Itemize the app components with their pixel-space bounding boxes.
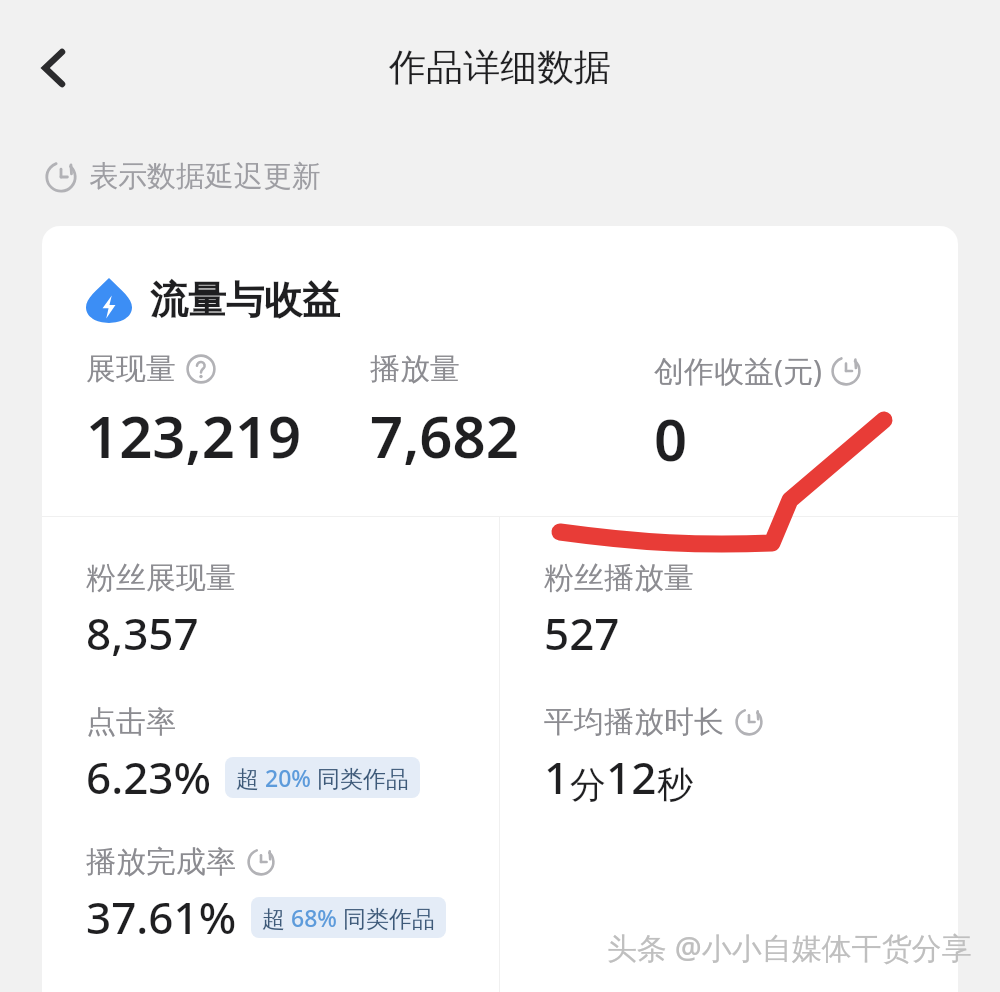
button[interactable]: Back: [18, 32, 90, 104]
staticText: 7,682: [370, 396, 519, 475]
staticText: 播放量: [370, 350, 460, 388]
staticText: 头条 @小小自媒体干货分享: [607, 927, 972, 968]
staticText: 创作收益(元): [654, 350, 822, 391]
staticText: 68%: [291, 902, 337, 933]
staticText: 1: [544, 747, 570, 807]
staticText: 展现量: [86, 350, 176, 388]
staticText: 分: [570, 762, 606, 807]
button[interactable]: 超: [251, 897, 446, 938]
staticText: 作品详细数据: [389, 44, 611, 91]
button[interactable]: 超: [225, 757, 420, 798]
staticText: 秒: [657, 762, 693, 807]
staticText: 点击率: [86, 703, 176, 741]
staticText: 123,219: [86, 396, 302, 475]
staticText: 20%: [265, 762, 311, 793]
staticText: 粉丝播放量: [544, 559, 694, 597]
staticText: 6.23%: [86, 747, 211, 807]
staticText: 播放完成率: [86, 843, 236, 881]
staticText: 超: [262, 902, 291, 933]
staticText: 表示数据延迟更新: [89, 158, 321, 195]
staticText: 同类作品: [311, 762, 409, 793]
staticText: 超: [236, 762, 265, 793]
staticText: 平均播放时长: [544, 703, 724, 741]
staticText: 粉丝展现量: [86, 559, 236, 597]
staticText: 527: [544, 603, 620, 663]
staticText: 同类作品: [337, 902, 435, 933]
staticText: 流量与收益: [150, 276, 340, 324]
staticText: 37.61%: [86, 887, 237, 947]
staticText: 0: [654, 399, 688, 478]
staticText: 8,357: [86, 603, 199, 663]
staticText: 12: [606, 747, 657, 807]
